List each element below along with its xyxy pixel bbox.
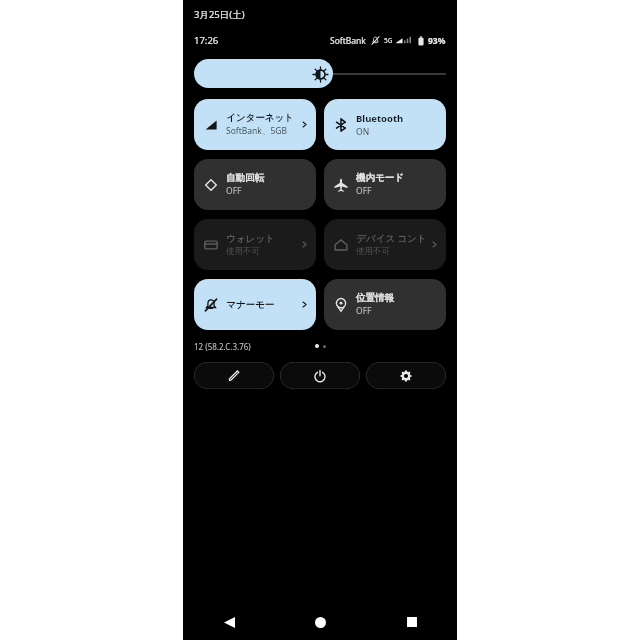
button[interactable] — [194, 59, 446, 88]
button[interactable]: Edit — [194, 362, 274, 389]
button[interactable]: ウォレット — [194, 219, 316, 270]
button[interactable]: Power — [280, 362, 360, 389]
button[interactable]: Recents — [366, 604, 457, 640]
button[interactable]: 自動回転 — [194, 159, 316, 210]
button[interactable]: インターネット — [194, 99, 316, 150]
staticText: ON — [356, 126, 370, 138]
staticText: 12 (58.2.C.3.76) — [194, 341, 251, 352]
button[interactable]: マナーモー — [194, 279, 316, 330]
staticText: デバイス コント — [356, 232, 427, 245]
staticText: OFF — [226, 185, 242, 197]
staticText: OFF — [356, 305, 372, 317]
button[interactable]: Settings — [366, 362, 446, 389]
staticText: 93% — [428, 35, 446, 47]
staticText: 機内モード — [356, 172, 404, 184]
button[interactable]: 位置情報 — [324, 279, 446, 330]
staticText: SoftBank、5GB — [226, 125, 287, 137]
staticText: SoftBank — [330, 35, 366, 47]
staticText: ウォレット — [226, 233, 275, 245]
button[interactable]: Home — [275, 604, 366, 640]
staticText: インターネット — [226, 112, 294, 124]
staticText: OFF — [356, 185, 372, 197]
staticText: 自動回転 — [226, 172, 264, 184]
staticText: 位置情報 — [356, 292, 394, 304]
button[interactable]: 機内モード — [324, 159, 446, 210]
staticText: Bluetooth — [356, 112, 404, 125]
button[interactable]: Bluetooth — [324, 99, 446, 150]
button[interactable]: Back — [183, 604, 275, 640]
button[interactable]: デバイス コント — [324, 219, 446, 270]
staticText: 17:26 — [194, 34, 219, 47]
staticText: 使用不可 — [226, 246, 260, 257]
staticText: 使用不可 — [356, 246, 390, 257]
staticText: 3月25日(土) — [194, 8, 245, 21]
staticText: 5G — [384, 36, 393, 45]
staticText: マナーモー — [226, 299, 275, 311]
